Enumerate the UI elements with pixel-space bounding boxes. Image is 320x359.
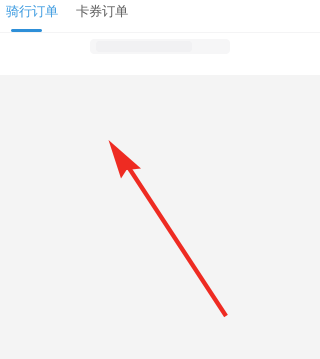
staticText: 卡券订单 (76, 3, 128, 19)
button[interactable]: 卡券订单 (76, 0, 128, 32)
button[interactable]: 骑行订单 (6, 0, 58, 32)
staticText: 骑行订单 (6, 3, 58, 19)
